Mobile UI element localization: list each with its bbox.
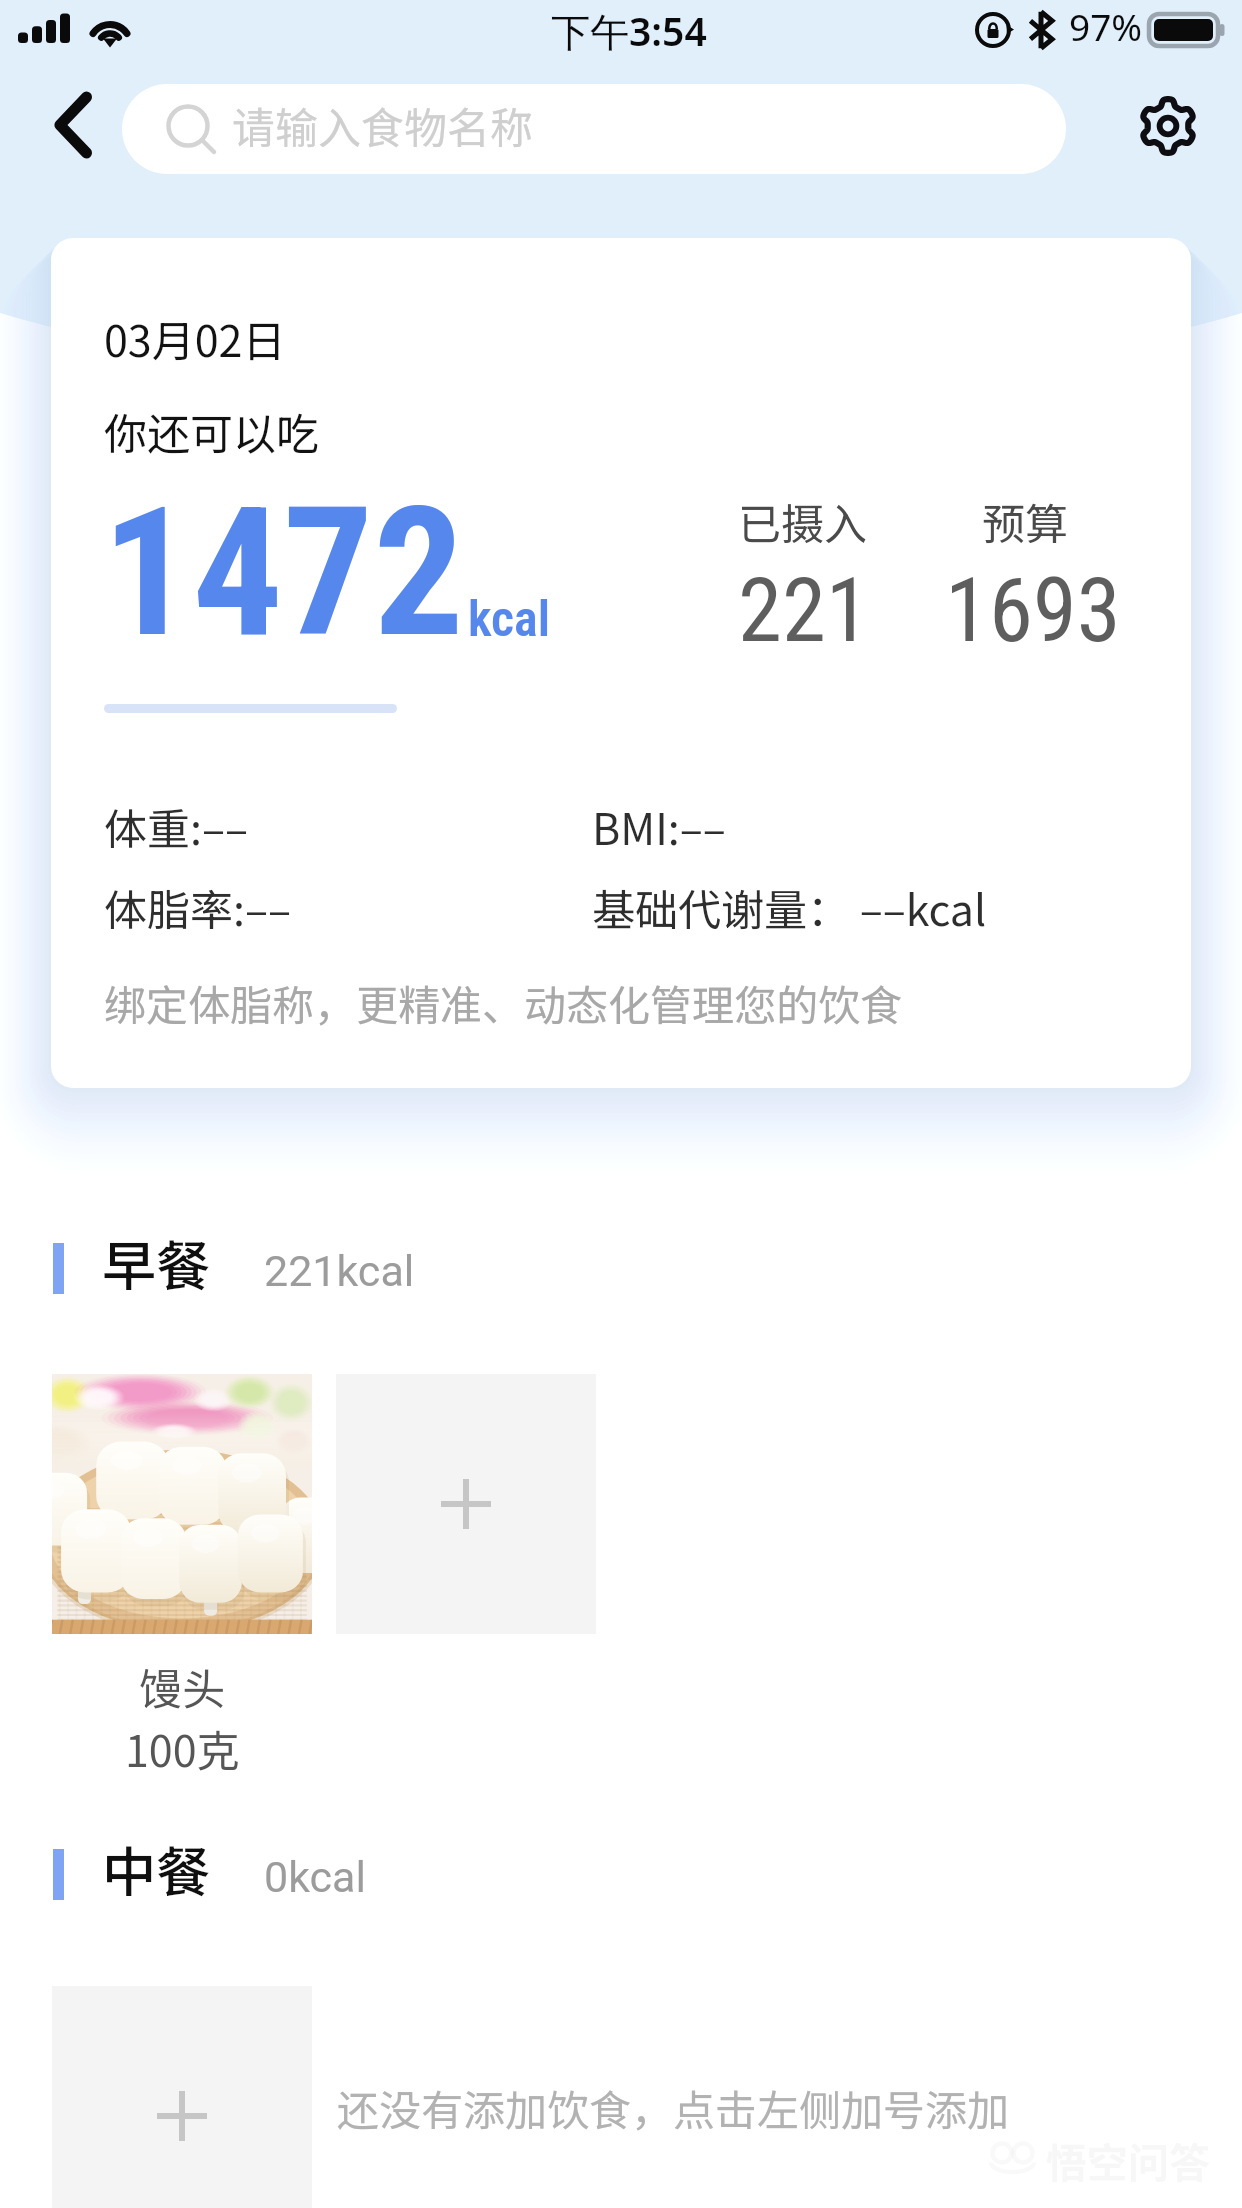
staticText: 中餐 — [102, 1829, 210, 1907]
staticText: 0kcal — [264, 1852, 366, 1902]
staticText: 悟空问答 — [1046, 2130, 1210, 2189]
staticText: 221 — [738, 558, 870, 662]
staticText: 基础代谢量： ––kcal — [592, 876, 987, 938]
staticText: 体脂率:–– — [104, 876, 292, 938]
button[interactable]: Add food — [52, 1986, 312, 2208]
button[interactable]: 早餐 — [40, 1229, 560, 1309]
staticText: 绑定体脂称，更精准、动态化管理您的饮食 — [104, 972, 903, 1033]
staticText: 早餐 — [102, 1223, 210, 1301]
staticText: 请输入食物名称 — [232, 94, 533, 156]
staticText: 体重:–– — [104, 795, 249, 857]
button[interactable]: Settings — [1110, 68, 1226, 184]
staticText: 还没有添加饮食，点击左侧加号添加 — [337, 2077, 1010, 2138]
button[interactable]: 请输入食物名称 — [122, 84, 1066, 174]
staticText: 100克 — [125, 1717, 240, 1779]
staticText: 你还可以吃 — [104, 400, 319, 462]
button[interactable]: 馒头 — [52, 1374, 312, 1779]
staticText: 1693 — [945, 558, 1121, 662]
button[interactable]: 中餐 — [40, 1835, 560, 1915]
staticText: 已摄入 — [738, 490, 867, 552]
button[interactable]: 03月02日 — [51, 238, 1191, 1088]
staticText: BMI:–– — [592, 795, 726, 857]
staticText: 97% — [1069, 1, 1143, 51]
staticText: kcal — [468, 590, 551, 649]
button[interactable]: Back — [14, 70, 130, 180]
staticText: 下午3:54 — [551, 4, 707, 57]
button[interactable]: Add food — [336, 1374, 596, 1634]
staticText: 1472 — [102, 468, 464, 678]
staticText: 03月02日 — [104, 307, 286, 369]
staticText: 预算 — [982, 490, 1068, 552]
staticText: 221kcal — [264, 1246, 415, 1296]
staticText: 馒头 — [139, 1655, 225, 1717]
